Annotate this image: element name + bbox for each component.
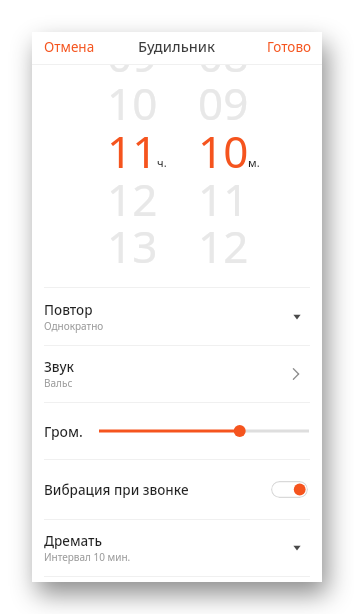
button[interactable]: Дремать xyxy=(32,520,322,576)
staticText: Готово xyxy=(267,38,312,56)
other: Expand xyxy=(292,312,302,322)
staticText: Будильник xyxy=(138,36,216,56)
button[interactable]: Вибрация при звонке xyxy=(32,460,322,519)
staticText: Однократно xyxy=(44,319,104,333)
button[interactable]: Volume xyxy=(99,421,309,441)
staticText: Гром. xyxy=(44,422,83,441)
staticText: Повтор xyxy=(44,301,93,319)
staticText: 12 xyxy=(198,216,249,276)
button[interactable]: Звук xyxy=(32,346,322,402)
button[interactable]: Повтор xyxy=(32,288,322,345)
staticText: 09 xyxy=(107,25,158,85)
staticText: 12 xyxy=(107,169,158,229)
staticText: м. xyxy=(248,155,260,170)
staticText: Вальс xyxy=(44,376,73,390)
button[interactable]: Vibration on ring xyxy=(271,481,308,498)
button[interactable]: Hours xyxy=(90,64,180,286)
button[interactable]: Готово xyxy=(255,32,322,62)
other: Expand xyxy=(292,543,302,553)
staticText: 09 xyxy=(198,73,249,133)
staticText: Вибрация при звонке xyxy=(44,481,189,499)
staticText: 08 xyxy=(198,25,249,85)
staticText: Звук xyxy=(44,358,75,376)
button[interactable]: Minutes xyxy=(182,64,272,286)
staticText: 10 xyxy=(198,121,249,181)
staticText: Отмена xyxy=(44,38,95,56)
staticText: Дремать xyxy=(44,532,103,550)
button[interactable]: Отмена xyxy=(32,32,107,62)
other: Open sound settings xyxy=(290,368,302,380)
staticText: 10 xyxy=(107,73,158,133)
staticText: Интервал 10 мин. xyxy=(44,550,131,564)
staticText: ч. xyxy=(157,155,167,170)
staticText: 11 xyxy=(198,169,249,229)
staticText: 11 xyxy=(107,121,158,181)
staticText: 13 xyxy=(107,216,158,276)
